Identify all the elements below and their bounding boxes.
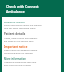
staticText: Ambulance [6, 9, 25, 14]
staticText: continuing with this request [4, 52, 33, 55]
staticText: Some information about the request [4, 24, 42, 27]
staticText: are listed in this section here [4, 40, 34, 43]
staticText: that has been submitted today [4, 27, 36, 30]
staticText: and a second line of detail [4, 64, 31, 67]
staticText: Name, date of birth and address [4, 37, 38, 40]
staticText: Check with Connect [6, 4, 39, 9]
staticText: Additional supporting text here [4, 61, 37, 64]
staticText: Patient details [4, 32, 26, 36]
staticText: Reference number [4, 20, 25, 23]
staticText: Important notice [4, 45, 28, 49]
staticText: More information [4, 57, 26, 61]
staticText: Please read the guidance before [4, 49, 38, 52]
